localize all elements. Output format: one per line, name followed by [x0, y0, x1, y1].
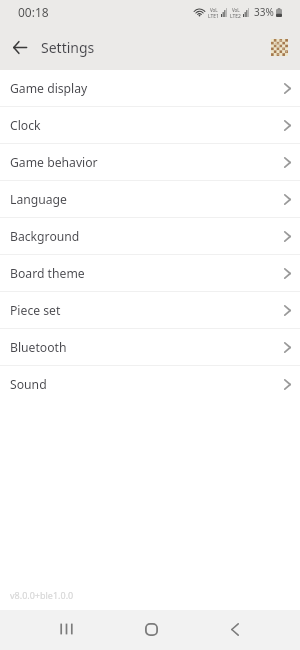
staticText: VoL — [232, 7, 240, 13]
staticText: LTE1 — [208, 13, 219, 18]
button[interactable]: Background — [0, 218, 300, 255]
button[interactable]: Home — [131, 610, 171, 648]
staticText: LTE2 — [230, 13, 241, 18]
staticText: 00:18 — [18, 4, 49, 20]
staticText: Game display — [10, 80, 88, 97]
staticText: Background — [10, 228, 80, 245]
button[interactable]: Back — [5, 32, 35, 62]
staticText: Sound — [10, 376, 47, 393]
staticText: VoL — [210, 7, 218, 13]
button[interactable]: Board theme — [0, 255, 300, 292]
staticText: Bluetooth — [10, 339, 67, 356]
staticText: Clock — [10, 117, 41, 134]
staticText: Language — [10, 191, 67, 208]
staticText: v8.0.0+ble1.0.0 — [10, 589, 74, 601]
staticText: Settings — [41, 38, 95, 57]
button[interactable]: Bluetooth — [0, 329, 300, 366]
staticText: Piece set — [10, 302, 61, 319]
staticText: Board theme — [10, 265, 85, 282]
button[interactable]: Chess board — [265, 33, 293, 61]
button[interactable]: Sound — [0, 366, 300, 403]
staticText: 33% — [254, 5, 274, 19]
button[interactable]: Language — [0, 181, 300, 218]
button[interactable]: Piece set — [0, 292, 300, 329]
button[interactable]: Game display — [0, 70, 300, 107]
staticText: Game behavior — [10, 154, 98, 171]
button[interactable]: Recent apps — [46, 610, 86, 648]
button[interactable]: Game behavior — [0, 144, 300, 181]
button[interactable]: Clock — [0, 107, 300, 144]
button[interactable]: Back — [215, 610, 255, 648]
